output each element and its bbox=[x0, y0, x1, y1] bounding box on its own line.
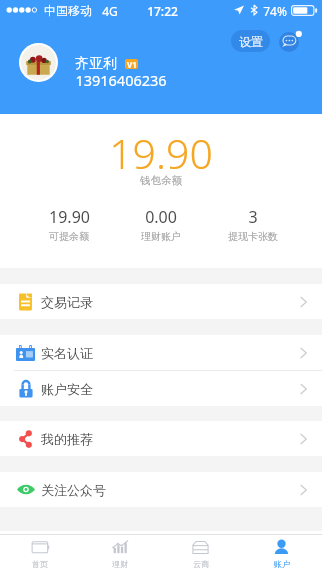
staticText: 19.90 bbox=[109, 125, 213, 181]
staticText: 0.00 bbox=[145, 206, 177, 228]
button[interactable]: 实名认证 bbox=[0, 335, 322, 370]
staticText: 交易记录 bbox=[41, 294, 93, 310]
staticText: 提现卡张数 bbox=[228, 230, 278, 243]
button[interactable]: 理财 bbox=[80, 535, 160, 572]
button[interactable]: 关注公众号 bbox=[0, 472, 322, 507]
staticText: 设置 bbox=[239, 34, 263, 49]
staticText: 74% bbox=[263, 3, 287, 19]
button[interactable]: 账户 bbox=[241, 535, 322, 572]
button[interactable]: 云商 bbox=[160, 535, 241, 572]
staticText: 3 bbox=[248, 206, 258, 228]
button[interactable]: 账户安全 bbox=[0, 371, 322, 406]
staticText: 中国移动 bbox=[44, 3, 92, 18]
staticText: 17:22 bbox=[147, 3, 178, 19]
staticText: 关注公众号 bbox=[41, 482, 106, 498]
staticText: 账户 bbox=[274, 559, 290, 569]
staticText: 理财 bbox=[112, 559, 128, 569]
button[interactable]: 我的推荐 bbox=[0, 421, 322, 456]
staticText: V1 bbox=[127, 59, 137, 69]
staticText: 19.90 bbox=[49, 206, 90, 228]
staticText: 齐亚利 bbox=[75, 55, 117, 73]
staticText: 账户安全 bbox=[41, 381, 93, 397]
staticText: 我的推荐 bbox=[41, 431, 93, 447]
button[interactable]: 首页 bbox=[0, 535, 80, 572]
button[interactable]: 交易记录 bbox=[0, 284, 322, 319]
staticText: 钱包余额 bbox=[140, 174, 182, 187]
staticText: 理财账户 bbox=[141, 230, 181, 243]
staticText: 13916406236 bbox=[75, 70, 167, 90]
staticText: 首页 bbox=[32, 559, 48, 569]
button[interactable]: Messages bbox=[279, 30, 302, 52]
staticText: 4G bbox=[102, 3, 118, 19]
staticText: 实名认证 bbox=[41, 345, 93, 361]
button[interactable]: 设置 bbox=[231, 30, 270, 52]
staticText: 云商 bbox=[193, 559, 209, 569]
staticText: 可提余额 bbox=[49, 230, 89, 243]
